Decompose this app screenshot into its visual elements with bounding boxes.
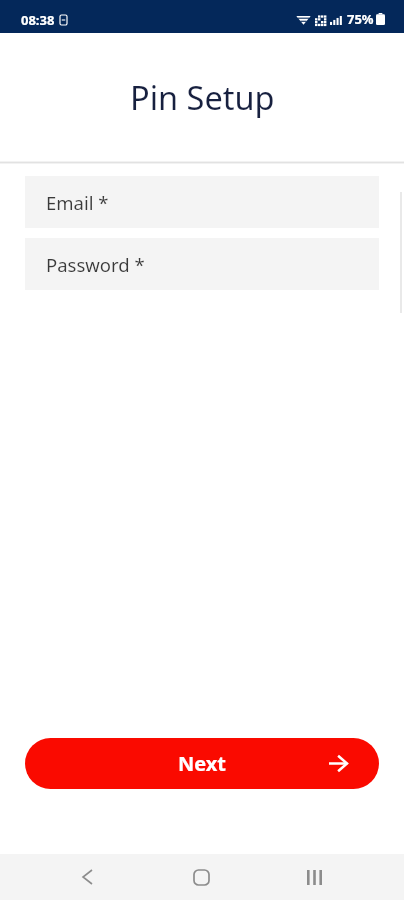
staticText: Next xyxy=(178,750,227,777)
button[interactable]: Email * xyxy=(25,176,379,228)
staticText: Email * xyxy=(46,190,109,215)
staticText: 08:38 xyxy=(21,11,55,29)
staticText: Pin Setup xyxy=(130,75,275,119)
button[interactable]: Home xyxy=(169,854,233,900)
staticText: 75% xyxy=(347,10,374,28)
button[interactable]: Recent apps xyxy=(282,854,346,900)
button[interactable]: Next xyxy=(25,738,379,789)
staticText: Password * xyxy=(46,252,145,277)
button[interactable]: Password * xyxy=(25,238,379,290)
button[interactable]: Back xyxy=(55,854,119,900)
